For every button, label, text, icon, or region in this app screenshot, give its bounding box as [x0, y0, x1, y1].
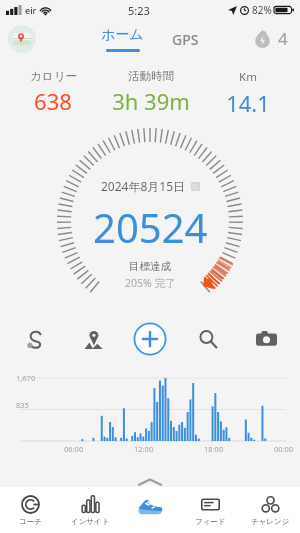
staticText: コーチ	[19, 517, 42, 526]
button[interactable]: Camera	[248, 321, 284, 357]
staticText: 20524	[93, 200, 208, 254]
staticText: eir	[25, 4, 37, 16]
staticText: 835	[16, 400, 29, 410]
button[interactable]: Add activity	[133, 322, 167, 356]
staticText: 2024年8月15日	[101, 178, 186, 194]
button[interactable]: Streak	[253, 27, 288, 50]
staticText: チャレンジ	[251, 517, 290, 526]
staticText: 205% 完了	[125, 276, 176, 290]
button[interactable]: GPS	[166, 28, 205, 51]
staticText: ホーム	[101, 26, 144, 44]
staticText: 82%	[252, 3, 272, 17]
button[interactable]: 活動時間	[102, 69, 199, 116]
button[interactable]: フィード	[180, 487, 240, 533]
staticText: フィード	[195, 517, 226, 526]
button[interactable]: カロリー	[4, 69, 102, 116]
button[interactable]: 1,670	[0, 368, 300, 454]
button[interactable]: Places	[75, 321, 111, 357]
staticText: 5:23	[128, 3, 150, 18]
staticText: 1,670	[16, 373, 36, 383]
staticText: 活動時間	[128, 69, 174, 83]
button[interactable]: インサイト	[60, 487, 120, 533]
button[interactable]: Search	[190, 321, 226, 357]
staticText: カロリー	[30, 69, 77, 83]
staticText: GPS	[172, 30, 199, 49]
staticText: Km	[239, 69, 257, 85]
staticText: インサイト	[71, 517, 110, 526]
button[interactable]: ホーム	[95, 26, 150, 52]
button[interactable]: Route	[16, 321, 52, 357]
staticText: 14.1	[226, 88, 270, 118]
button[interactable]: Activity	[130, 485, 170, 525]
staticText: 3h 39m	[112, 86, 190, 116]
staticText: 目標達成	[129, 260, 171, 273]
button[interactable]: 2024年8月15日	[101, 178, 200, 194]
button[interactable]: Profile	[8, 25, 36, 53]
staticText: 4	[278, 27, 288, 50]
button[interactable]: チャレンジ	[240, 487, 300, 533]
staticText: 638	[34, 86, 72, 116]
button[interactable]: コーチ	[0, 487, 60, 533]
staticText: 12:00	[134, 444, 154, 454]
button[interactable]: Km	[199, 69, 296, 118]
staticText: 06:00	[64, 444, 84, 454]
staticText: 00:00	[274, 444, 294, 454]
staticText: 18:00	[204, 444, 224, 454]
button[interactable]: Step goal progress	[55, 126, 245, 316]
